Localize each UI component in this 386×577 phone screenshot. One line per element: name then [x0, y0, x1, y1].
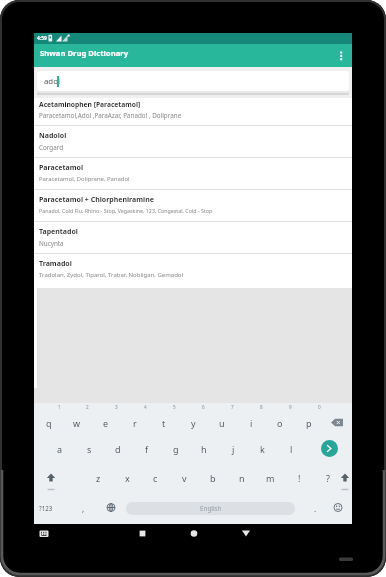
button[interactable]: .	[299, 498, 331, 518]
button[interactable]: a	[44, 439, 76, 459]
staticText: !	[298, 472, 301, 484]
button[interactable]: b	[197, 468, 229, 488]
button[interactable]: ?123	[30, 498, 62, 518]
staticText: Corgard	[39, 143, 64, 152]
staticText: English	[200, 504, 222, 513]
staticText: 2	[86, 404, 89, 410]
button[interactable]: e	[90, 413, 122, 433]
button[interactable]: f	[131, 439, 163, 459]
staticText: c	[153, 472, 158, 484]
button[interactable]: y	[177, 413, 209, 433]
button[interactable]: n	[226, 468, 258, 488]
button[interactable]: o	[264, 413, 296, 433]
staticText: Tapentadol	[39, 227, 78, 237]
button[interactable]: l	[275, 439, 307, 459]
staticText: p	[306, 417, 312, 429]
staticText: k	[260, 443, 265, 455]
staticText: .	[314, 503, 317, 514]
staticText: r	[133, 417, 137, 429]
staticText: Paracetamol, Doliprane, Panadol	[39, 175, 130, 183]
staticText: 6	[202, 404, 205, 410]
button[interactable]: t	[148, 413, 180, 433]
button[interactable]: Tapentadol	[34, 222, 352, 254]
staticText: 5	[173, 404, 176, 410]
staticText: Acetaminophen [Paracetamol]	[39, 100, 141, 109]
staticText: s	[87, 443, 92, 455]
button[interactable]: c	[139, 468, 171, 488]
button[interactable]: z	[82, 468, 114, 488]
button[interactable]	[183, 524, 205, 544]
staticText: 1	[58, 404, 61, 410]
button[interactable]: English	[126, 502, 295, 515]
button[interactable]	[321, 440, 338, 457]
staticText: ?123	[39, 504, 53, 512]
button[interactable]: ,	[67, 498, 99, 518]
button[interactable]: w	[61, 413, 93, 433]
button[interactable]: v	[168, 468, 200, 488]
staticText: Paracetamol	[39, 163, 84, 173]
staticText: 9	[289, 404, 292, 410]
staticText: m	[266, 472, 275, 484]
staticText: Shwan Drug Dictionary	[40, 48, 129, 58]
staticText: z	[96, 472, 101, 484]
staticText: f	[145, 443, 149, 455]
button[interactable]	[235, 524, 257, 544]
staticText: Nucynta	[39, 239, 64, 248]
button[interactable]: Paracetamol	[34, 158, 352, 190]
button[interactable]	[132, 524, 154, 544]
button[interactable]: !	[283, 468, 315, 488]
staticText: w	[73, 417, 81, 429]
staticText: x	[125, 472, 130, 484]
staticText: l	[290, 443, 293, 455]
staticText: Panadol, Cold Flu, Rhino - Stop, Vegaski…	[39, 207, 213, 214]
button[interactable]: i	[235, 413, 267, 433]
staticText: u	[219, 417, 225, 429]
staticText: b	[210, 472, 216, 484]
staticText: 0	[318, 404, 321, 410]
button[interactable]: x	[111, 468, 143, 488]
button[interactable]: q	[33, 413, 65, 433]
staticText: 4:59	[37, 35, 47, 42]
button[interactable]: Paracetamol + Chlorpheniramine	[34, 190, 352, 222]
button[interactable]: p	[293, 413, 325, 433]
button[interactable]	[332, 44, 352, 68]
staticText: e	[103, 417, 109, 429]
staticText: t	[162, 417, 166, 429]
staticText: ,	[82, 503, 85, 514]
staticText: o	[277, 417, 283, 429]
staticText: Tramadol	[39, 259, 72, 269]
button[interactable]: m	[254, 468, 286, 488]
staticText: q	[46, 417, 52, 429]
staticText: v	[182, 472, 187, 484]
button[interactable]: d	[102, 439, 134, 459]
staticText: j	[232, 443, 235, 455]
staticText: a	[57, 443, 63, 455]
staticText: 8	[260, 404, 263, 410]
staticText: Nadolol	[39, 131, 67, 141]
button[interactable]: k	[246, 439, 278, 459]
staticText: d	[115, 443, 121, 455]
staticText: adol	[44, 76, 60, 87]
button[interactable]: Nadolol	[34, 126, 352, 158]
button[interactable]: ?	[312, 468, 344, 488]
staticText: 4	[144, 404, 147, 410]
staticText: ?	[326, 472, 330, 484]
button[interactable]: h	[188, 439, 220, 459]
button[interactable]: r	[119, 413, 151, 433]
staticText: h	[201, 443, 207, 455]
button[interactable]: Tramadol	[34, 254, 352, 289]
staticText: Paracetamol + Chlorpheniramine	[39, 195, 154, 205]
staticText: 3	[115, 404, 118, 410]
button[interactable]: u	[206, 413, 238, 433]
staticText: Tradolan, Zydol, Tiparol, Trabar, Noblig…	[39, 271, 184, 279]
button[interactable]: j	[217, 439, 249, 459]
button[interactable]: adol	[37, 71, 349, 91]
button[interactable]: s	[73, 439, 105, 459]
staticText: 7	[231, 404, 234, 410]
button[interactable]: Acetaminophen [Paracetamol]	[34, 98, 352, 126]
staticText: n	[239, 472, 245, 484]
staticText: i	[250, 417, 253, 429]
button[interactable]: g	[160, 439, 192, 459]
staticText: Paracetamol,Adol ,ParaAzar, Panadol , Do…	[39, 111, 182, 120]
staticText: y	[191, 417, 196, 429]
